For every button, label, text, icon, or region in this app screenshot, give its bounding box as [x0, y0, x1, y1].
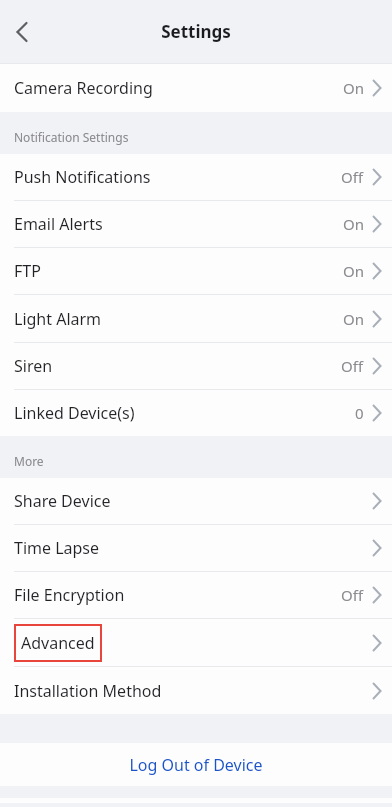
- button[interactable]: Back: [0, 10, 44, 54]
- button[interactable]: Light Alarm: [0, 295, 392, 342]
- staticText: Off: [341, 585, 364, 605]
- staticText: Settings: [161, 20, 231, 43]
- staticText: Log Out of Device: [129, 754, 263, 776]
- staticText: More: [14, 453, 44, 469]
- staticText: Push Notifications: [14, 166, 151, 188]
- staticText: Off: [341, 356, 364, 376]
- staticText: Light Alarm: [14, 308, 102, 330]
- button[interactable]: FTP: [0, 248, 392, 294]
- staticText: On: [343, 214, 364, 234]
- button[interactable]: Time Lapse: [0, 525, 392, 571]
- staticText: Advanced: [21, 632, 95, 654]
- staticText: On: [343, 261, 364, 281]
- button[interactable]: Email Alerts: [0, 201, 392, 247]
- button[interactable]: File Encryption: [0, 572, 392, 618]
- staticText: 0: [355, 403, 364, 423]
- staticText: Linked Device(s): [14, 402, 135, 424]
- staticText: Camera Recording: [14, 77, 153, 99]
- button[interactable]: Installation Method: [0, 667, 392, 714]
- staticText: On: [343, 309, 364, 329]
- staticText: Time Lapse: [14, 537, 100, 559]
- staticText: On: [343, 78, 364, 98]
- button[interactable]: Camera Recording: [0, 64, 392, 112]
- button[interactable]: Siren: [0, 343, 392, 389]
- staticText: FTP: [14, 260, 41, 282]
- staticText: Notification Settings: [14, 129, 129, 145]
- button[interactable]: Linked Device(s): [0, 390, 392, 436]
- staticText: Share Device: [14, 490, 111, 512]
- staticText: Installation Method: [14, 680, 162, 702]
- staticText: Email Alerts: [14, 213, 103, 235]
- button[interactable]: Push Notifications: [0, 154, 392, 200]
- staticText: File Encryption: [14, 584, 125, 606]
- staticText: Off: [341, 167, 364, 187]
- button[interactable]: Advanced: [0, 619, 392, 666]
- button[interactable]: Share Device: [0, 478, 392, 524]
- staticText: Siren: [14, 355, 53, 377]
- button[interactable]: Log Out of Device: [0, 743, 392, 786]
